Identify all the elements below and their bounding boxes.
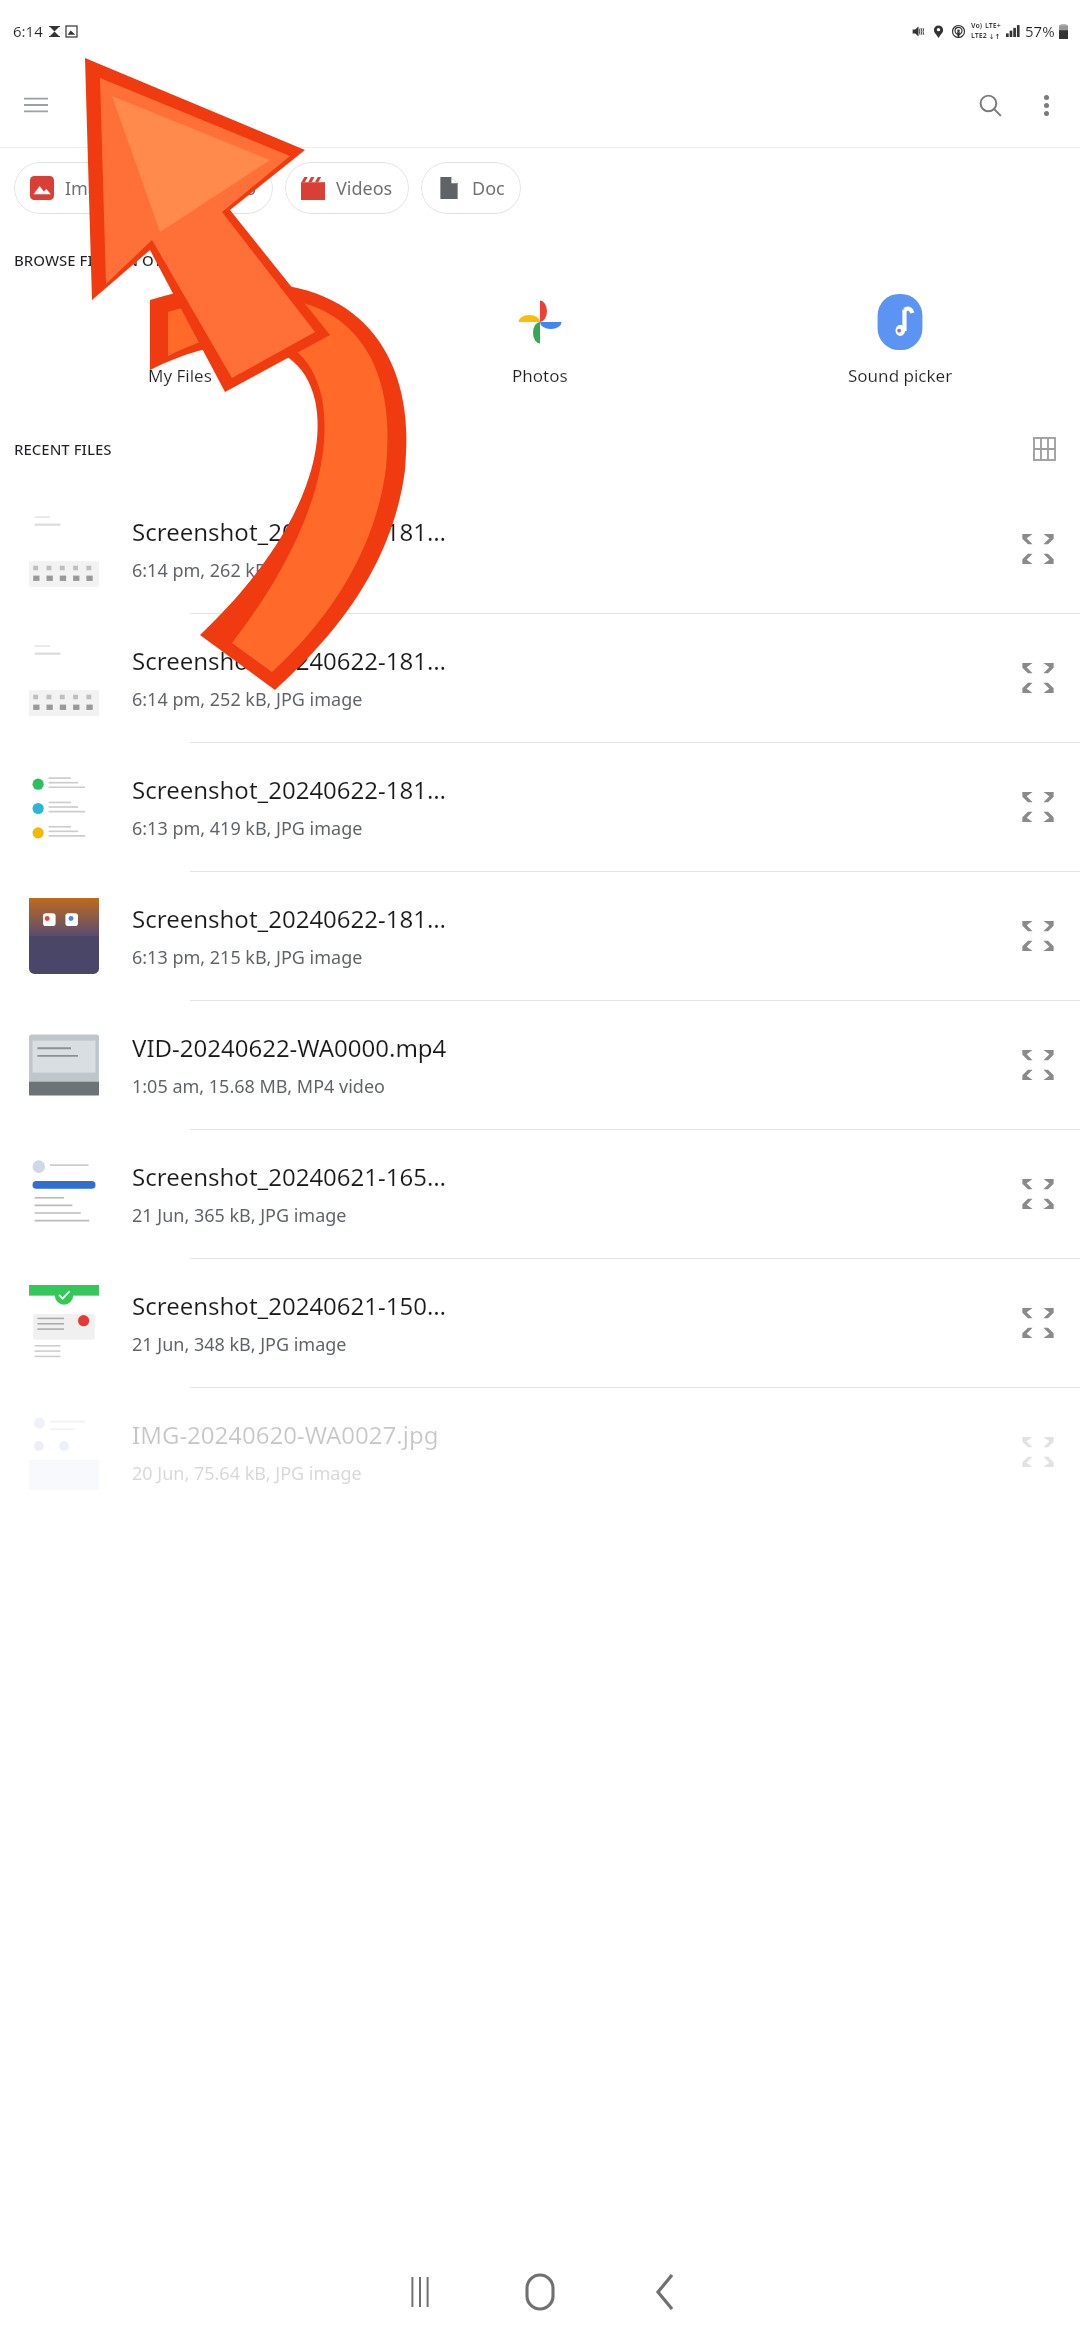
staticText: My Files [148, 364, 212, 387]
button[interactable]: Expand [1010, 908, 1066, 964]
button[interactable]: Expand [1010, 1295, 1066, 1351]
staticText: Screenshot_20240622-181… [132, 773, 446, 806]
button[interactable]: Screenshot_20240622-181… [0, 614, 1080, 742]
staticText: Videos [336, 176, 393, 201]
button[interactable]: Grid view [1022, 427, 1066, 471]
button[interactable]: Show roots [8, 77, 64, 133]
staticText: Screenshot_20240622-181… [132, 902, 446, 935]
staticText: Screenshot_20240622-181… [132, 644, 446, 677]
button[interactable]: Screenshot_20240622-181… [0, 743, 1080, 871]
button[interactable]: Photos [360, 290, 720, 391]
staticText: 21 Jun, 365 kB, JPG image [132, 1203, 347, 1228]
staticText: Vo) [971, 21, 983, 31]
staticText: LTE2 [971, 31, 987, 41]
staticText: Screenshot_20240621-150… [132, 1289, 446, 1322]
staticText: 6:14 pm, 252 kB, JPG image [132, 687, 363, 712]
staticText: BROWSE FILES IN OTHER APPS [14, 250, 232, 270]
button[interactable]: Audio [156, 162, 273, 214]
button[interactable]: Screenshot_20240621-150… [0, 1259, 1080, 1387]
button[interactable]: Doc [421, 162, 521, 214]
button[interactable]: Expand [1010, 1424, 1066, 1480]
button[interactable]: Screenshot_20240622-181… [0, 485, 1080, 613]
button[interactable]: Expand [1010, 1037, 1066, 1093]
staticText: Images [65, 176, 128, 201]
staticText: 6:13 pm, 215 kB, JPG image [132, 945, 363, 970]
button[interactable]: Expand [1010, 650, 1066, 706]
staticText: 20 Jun, 75.64 kB, JPG image [132, 1461, 362, 1486]
staticText: Screenshot_20240622-181… [132, 515, 446, 548]
staticText: Sound picker [848, 364, 953, 387]
staticText: RECENT FILES [14, 439, 112, 459]
button[interactable]: Images [14, 162, 144, 214]
button[interactable]: Expand [1010, 521, 1066, 577]
staticText: IMG-20240620-WA0027.jpg [132, 1418, 439, 1451]
button[interactable]: More options [1018, 77, 1074, 133]
staticText: VID-20240622-WA0000.mp4 [132, 1031, 447, 1064]
button[interactable]: VID-20240622-WA0000.mp4 [0, 1001, 1080, 1129]
button[interactable]: Back [635, 2262, 695, 2322]
staticText: Photos [512, 364, 568, 387]
staticText: Recent [85, 87, 171, 122]
staticText: 6:14 pm, 262 kB, JPG image [132, 558, 363, 583]
button[interactable]: My Files [0, 290, 360, 391]
staticText: Screenshot_20240621-165… [132, 1160, 446, 1193]
staticText: LTE+ [985, 21, 1001, 31]
staticText: Doc [472, 176, 505, 201]
button[interactable]: Videos [285, 162, 409, 214]
button[interactable]: Screenshot_20240621-165… [0, 1130, 1080, 1258]
button[interactable]: Sound picker [720, 290, 1080, 391]
staticText: 57% [1025, 21, 1055, 41]
staticText: Audio [207, 176, 257, 201]
button[interactable]: Screenshot_20240622-181… [0, 872, 1080, 1000]
button[interactable]: Recent apps [390, 2262, 450, 2322]
button[interactable]: Home [508, 2260, 572, 2324]
button[interactable]: Search [962, 77, 1018, 133]
staticText: 1:05 am, 15.68 MB, MP4 video [132, 1074, 385, 1099]
button[interactable]: Expand [1010, 1166, 1066, 1222]
staticText: 6:13 pm, 419 kB, JPG image [132, 816, 363, 841]
button[interactable]: Expand [1010, 779, 1066, 835]
button[interactable]: IMG-20240620-WA0027.jpg [0, 1388, 1080, 1516]
staticText: ↓↑ [989, 33, 1001, 41]
staticText: 6:14 [13, 21, 43, 41]
staticText: 21 Jun, 348 kB, JPG image [132, 1332, 347, 1357]
